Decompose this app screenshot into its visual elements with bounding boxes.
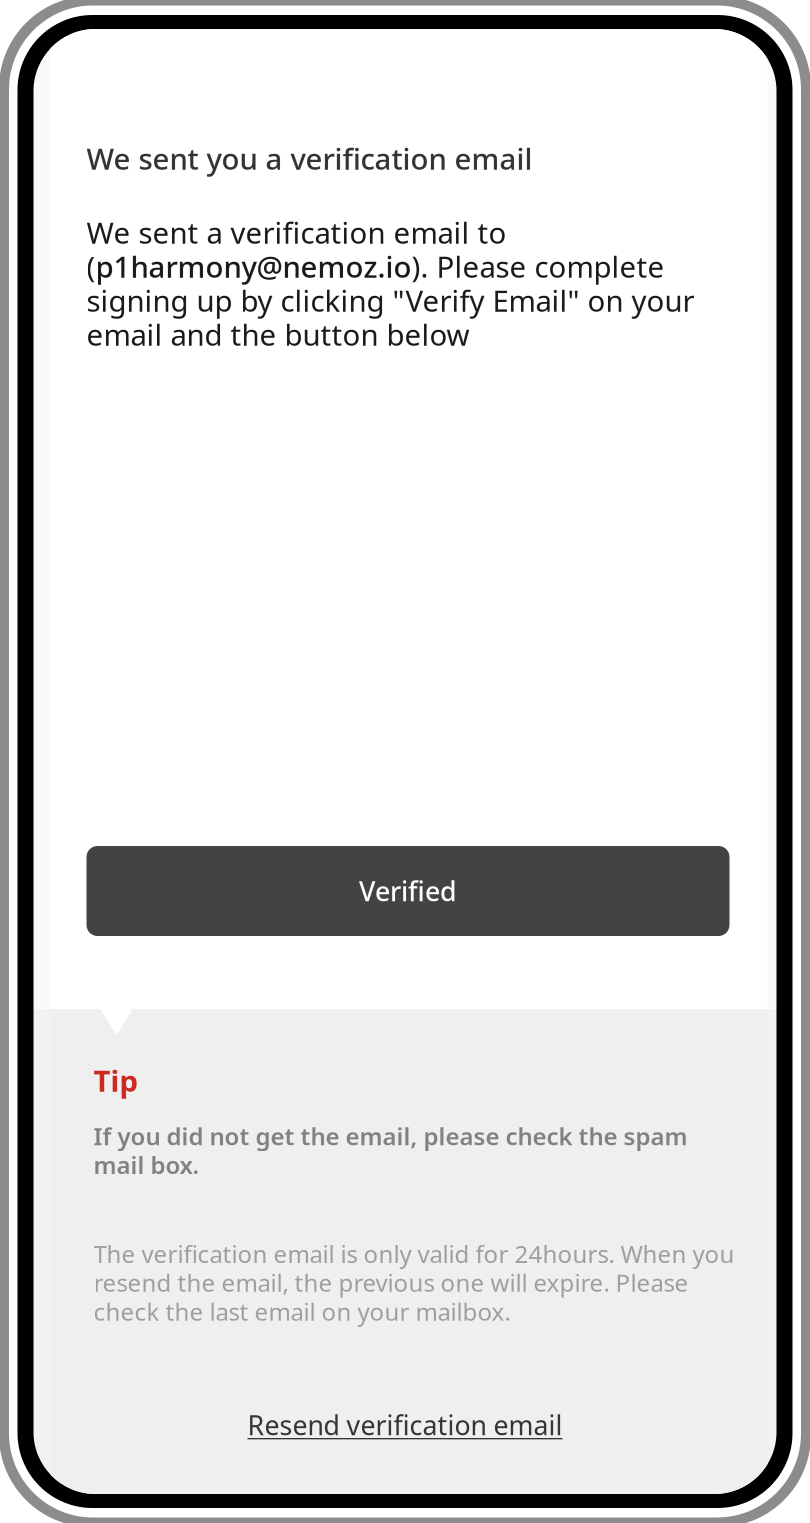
button[interactable]: Verified	[86, 846, 729, 936]
button[interactable]: Resend verification email	[33, 1403, 776, 1447]
staticText: We sent a verification email to (p1harmo…	[86, 213, 694, 354]
staticText: Resend verification email	[247, 1407, 562, 1443]
staticText: The verification email is only valid for…	[93, 1238, 734, 1327]
staticText: If you did not get the email, please che…	[93, 1120, 687, 1181]
staticText: Verified	[359, 873, 457, 909]
staticText: We sent you a verification email	[86, 139, 532, 178]
staticText: Tip	[93, 1061, 138, 1100]
